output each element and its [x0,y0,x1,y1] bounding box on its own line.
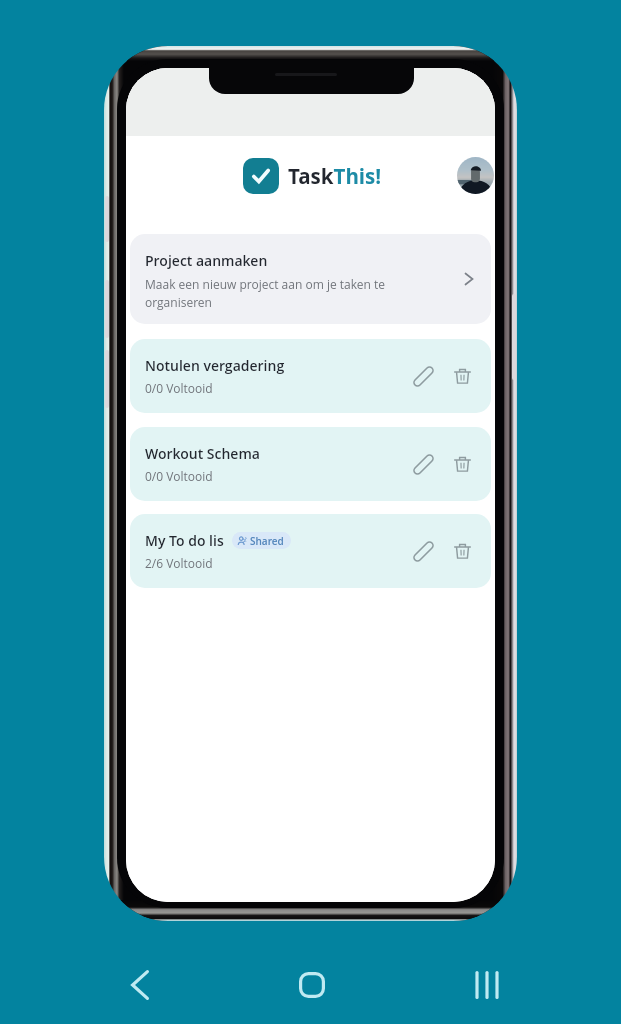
button[interactable]: Profile [457,157,494,194]
staticText: Notulen vergadering [145,356,285,375]
staticText: 0/0 Voltooid [145,468,213,484]
staticText: TaskThis! [288,162,382,190]
button[interactable]: Delete [445,447,480,482]
button[interactable]: Edit [406,534,441,569]
button[interactable]: Workout Schema [130,427,491,501]
button[interactable]: My To do lis [130,514,491,588]
staticText: Project aanmaken [145,251,268,270]
staticText: 0/0 Voltooid [145,380,213,396]
staticText: Shared [250,534,284,548]
staticText: My To do lis [145,531,224,550]
button[interactable]: Back [110,955,170,1015]
staticText: Workout Schema [145,444,260,463]
button[interactable]: Edit [406,359,441,394]
button[interactable]: Home [282,955,342,1015]
staticText: 2/6 Voltooid [145,555,213,571]
button[interactable]: Project aanmaken [130,234,491,324]
button[interactable]: Delete [445,359,480,394]
button[interactable]: Edit [406,447,441,482]
button[interactable]: Notulen vergadering [130,339,491,413]
button[interactable]: Recent apps [457,955,517,1015]
staticText: Maak een nieuw project aan om je taken t… [145,276,448,311]
button[interactable]: Delete [445,534,480,569]
